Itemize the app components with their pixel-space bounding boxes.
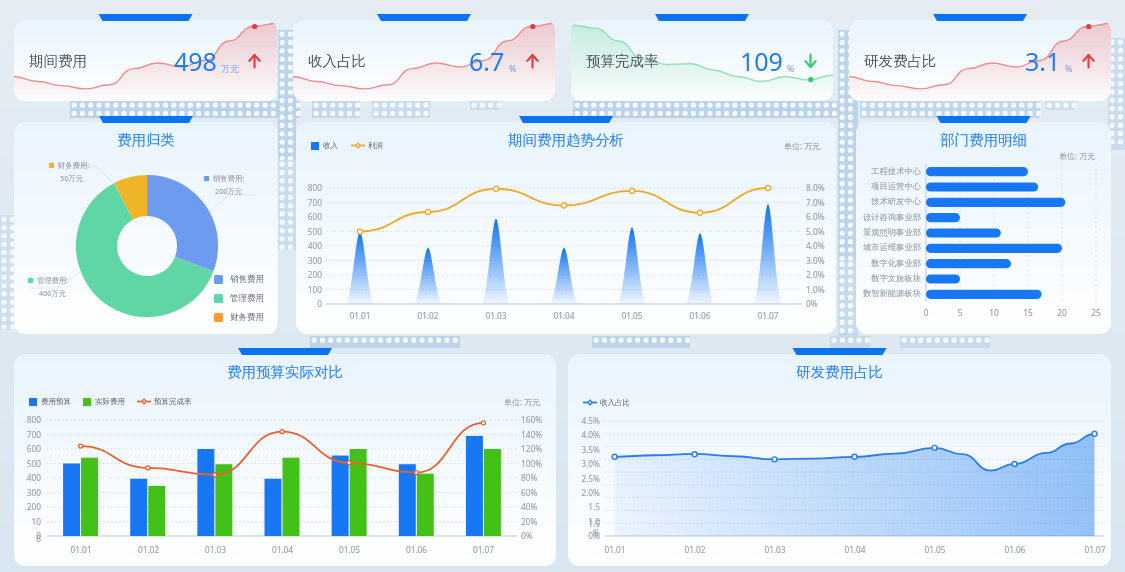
staticText: 4.0% [570,429,600,440]
staticText: 500 [296,226,322,237]
staticText: 20 [1053,307,1071,318]
staticText: 2.0% [570,487,600,498]
staticText: 0% [521,530,555,541]
button[interactable]: 研发费用占比 [568,348,1111,566]
button[interactable]: 费用预算实际对比 [14,348,556,566]
staticText: 15 [1019,307,1037,318]
staticText: 预算完成率 [154,397,192,406]
staticText: 8.0% [806,182,836,193]
staticText: 01.01 [47,544,115,555]
staticText: 期间费用趋势分析 [296,131,836,149]
staticText: 4.5% [570,415,600,426]
staticText: 1.5 [570,501,600,512]
staticText: 109 [740,44,783,78]
staticText: 管理费用: [37,275,69,285]
staticText: 利润 [368,141,383,150]
staticText: 单位: 万元 [784,140,821,151]
button[interactable]: 期间费用 [14,14,277,101]
staticText: 数字化事业部 [858,258,921,268]
button[interactable]: 预算完成率 [571,14,833,101]
staticText: 销售费用: [213,173,245,183]
staticText: 5 [951,307,969,318]
staticText: 01.04 [840,544,870,555]
button[interactable]: 费用归类 [14,116,278,334]
staticText: 数智新能源板块 [858,288,921,298]
staticText: 600 [296,211,322,222]
staticText: 600 [15,443,41,454]
staticText: 财务费用: [58,160,90,170]
staticText: 01.07 [1080,544,1110,555]
staticText: 500 [15,458,41,469]
staticText: 01.05 [598,310,666,321]
staticText: 5.0% [806,226,836,237]
staticText: 01.03 [462,310,530,321]
staticText: 管理费用 [230,293,264,304]
staticText: 单位: 万元 [504,396,541,407]
staticText: 项目运营中心 [858,181,921,191]
button[interactable]: 期间费用趋势分析 [296,116,836,334]
staticText: 工程技术中心 [858,166,921,176]
staticText: 50万元 [60,173,83,183]
staticText: 单位: 万元 [1059,150,1096,161]
staticText: 1.0% [806,284,836,295]
staticText: 3.0% [806,255,836,266]
staticText: 01.05 [920,544,950,555]
staticText: 0% [806,298,836,309]
staticText: 400 [296,240,322,251]
staticText: 800 [296,182,322,193]
staticText: 0 [15,530,41,541]
staticText: 3.0% [570,458,600,469]
staticText: 01.04 [249,544,316,555]
staticText: 700 [15,429,41,440]
staticText: 01.07 [450,544,517,555]
staticText: 3.1 [1025,44,1061,78]
staticText: 0 [296,298,322,309]
staticText: 01.02 [394,310,462,321]
staticText: 140% [521,429,555,440]
button[interactable]: 研发费占比 [849,14,1111,101]
staticText: 10 [985,307,1003,318]
staticText: 498 [174,44,217,78]
staticText: 收入 [323,141,338,150]
staticText: 销售费用 [230,274,264,285]
staticText: 万元 [221,63,239,74]
button[interactable]: 部门费用明细 [856,116,1111,334]
staticText: 700 [296,197,322,208]
staticText: 120% [521,443,555,454]
staticText: 01.02 [680,544,710,555]
staticText: 实际费用 [95,397,125,406]
staticText: 3.5% [570,444,600,455]
staticText: 费用归类 [14,131,278,149]
staticText: 25 [1087,307,1105,318]
staticText: 收入占比 [308,52,366,70]
staticText: 6.0% [806,211,836,222]
staticText: 01.07 [734,310,802,321]
staticText: 01.03 [182,544,249,555]
staticText: 160% [521,414,555,425]
staticText: 01.06 [383,544,450,555]
staticText: 2.0% [806,269,836,280]
staticText: 城市运维事业部 [858,242,921,252]
staticText: 800 [15,414,41,425]
staticText: 200万元 [215,186,243,196]
staticText: 期间费用 [29,52,87,70]
staticText: 2.5% [570,473,600,484]
staticText: 8 [15,533,41,544]
staticText: 01.05 [316,544,383,555]
button[interactable]: 收入占比 [293,14,555,101]
staticText: 40% [521,501,555,512]
staticText: 景观照明事业部 [858,227,921,237]
staticText: 400 [15,472,41,483]
staticText: 300 [296,255,322,266]
staticText: 01.01 [326,310,394,321]
staticText: 1.0 [570,516,600,527]
staticText: % [570,527,600,538]
staticText: % [509,62,517,74]
staticText: 预算完成率 [586,52,659,70]
staticText: 01.06 [666,310,734,321]
staticText: 数字文旅板块 [858,273,921,283]
staticText: 设计咨询事业部 [858,212,921,222]
staticText: 研发费占比 [864,52,937,70]
staticText: 6.7 [469,44,505,78]
staticText: 100 [296,284,322,295]
